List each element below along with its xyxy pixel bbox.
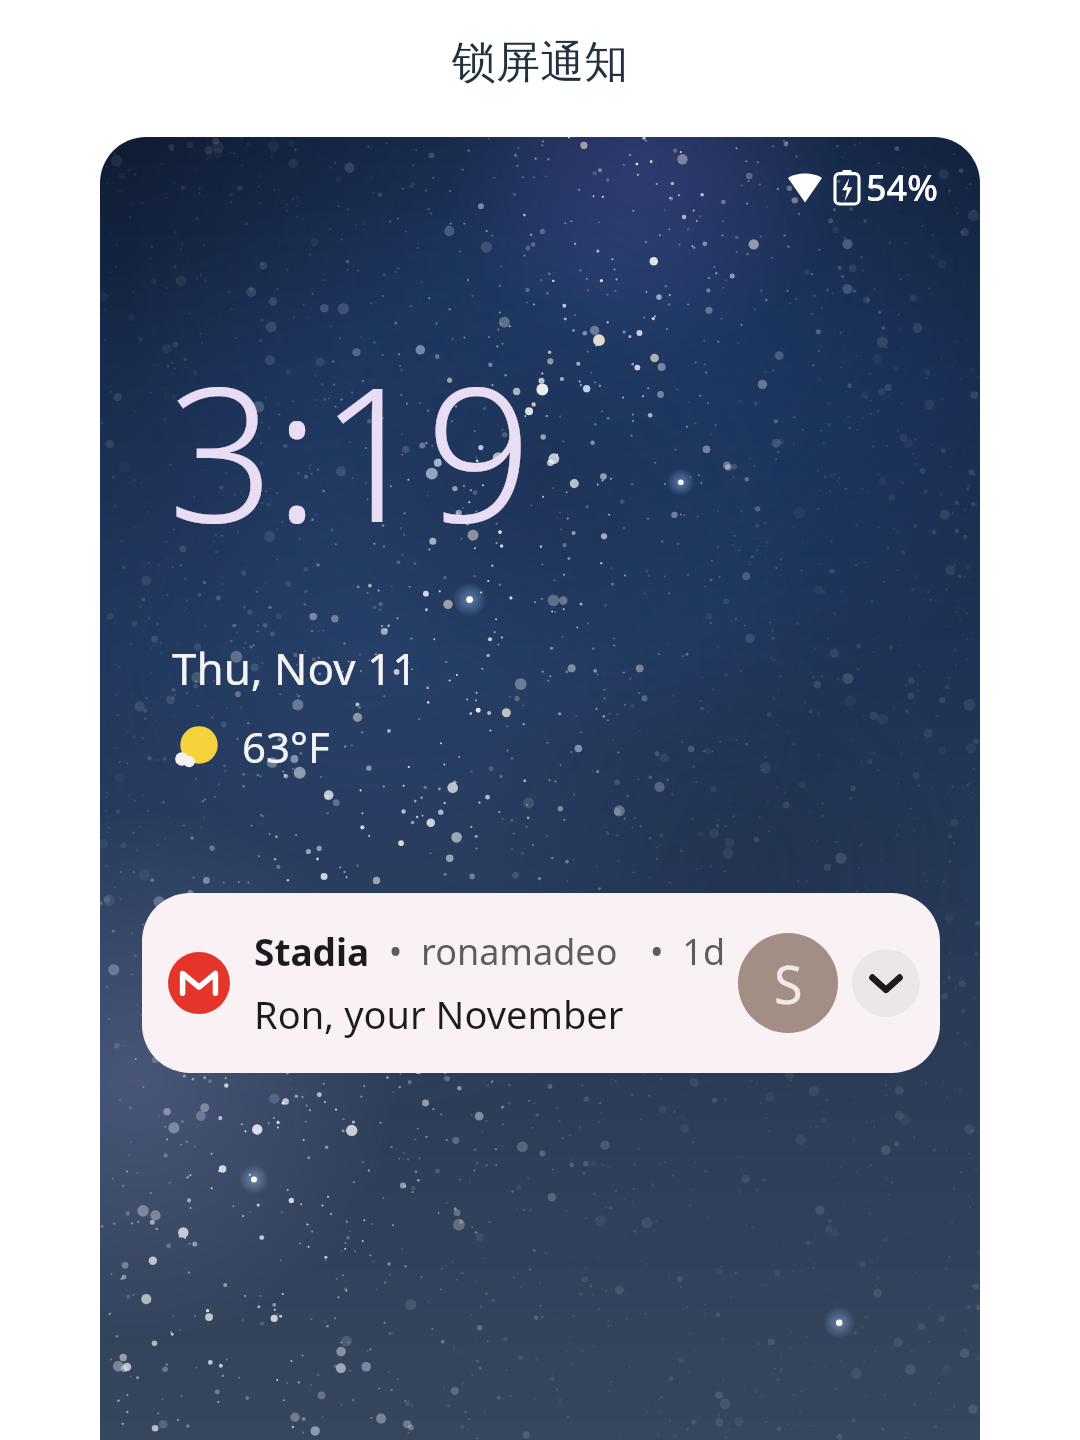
button[interactable]: Expand notification: [852, 949, 920, 1017]
staticText: •: [370, 927, 421, 976]
staticText: 54%: [866, 163, 938, 212]
staticText: 锁屏通知: [452, 35, 628, 90]
staticText: 63°F: [242, 718, 330, 775]
button[interactable]: Stadia: [142, 893, 940, 1073]
staticText: 3:19: [168, 323, 533, 576]
staticText: S: [774, 948, 803, 1019]
staticText: • 1d: [622, 927, 726, 976]
staticText: ronamadeo1@gmail.c...: [421, 927, 622, 976]
staticText: Ron, your November games are ..: [254, 988, 726, 1040]
staticText: Thu, Nov 11: [172, 638, 418, 698]
staticText: Stadia: [254, 926, 370, 976]
